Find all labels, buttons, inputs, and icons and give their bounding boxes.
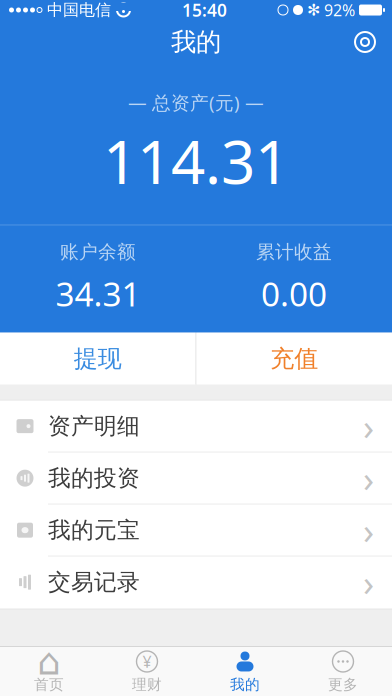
staticText: ¥ [142, 651, 151, 672]
button[interactable]: 交易记录 [0, 557, 392, 609]
button[interactable]: 我的投资 [0, 453, 392, 505]
button[interactable]: 资产明细 [0, 401, 392, 453]
staticText: 累计收益 [256, 240, 332, 263]
staticText: 交易记录 [48, 568, 140, 596]
button[interactable]: 更多 [294, 647, 392, 696]
staticText: › [363, 402, 374, 450]
button[interactable]: 我的 [196, 647, 294, 696]
staticText: 资产明细 [48, 412, 140, 440]
button[interactable]: ¥ [98, 647, 196, 696]
staticText: 我的投资 [48, 464, 140, 492]
button[interactable]: 充值 [196, 333, 392, 385]
staticText: 中国电信 [47, 0, 111, 20]
staticText: 账户余额 [60, 240, 136, 263]
staticText: ⌂ [37, 640, 61, 683]
staticText: 0.00 [261, 271, 327, 316]
staticText: 我的 [230, 675, 260, 693]
staticText: 更多 [328, 675, 358, 693]
staticText: 首页 [34, 675, 64, 693]
button[interactable]: 我的元宝 [0, 505, 392, 557]
button[interactable]: 提现 [0, 333, 195, 385]
staticText: — 总资产(元) — [128, 90, 264, 115]
staticText: 15:40 [182, 0, 227, 21]
staticText: 114.31 [103, 121, 289, 200]
staticText: 我的 [171, 26, 221, 57]
staticText: 我的元宝 [48, 516, 140, 544]
staticText: 充值 [270, 344, 318, 373]
staticText: ✻ [307, 1, 320, 19]
staticText: › [363, 558, 374, 606]
button[interactable]: 设置 [343, 20, 387, 64]
staticText: 提现 [74, 344, 122, 373]
staticText: 34.31 [55, 271, 140, 316]
staticText: 理财 [132, 675, 162, 693]
staticText: 92% [324, 0, 355, 21]
staticText: › [363, 454, 374, 502]
staticText: › [363, 506, 374, 554]
button[interactable]: ⌂ [0, 647, 98, 696]
